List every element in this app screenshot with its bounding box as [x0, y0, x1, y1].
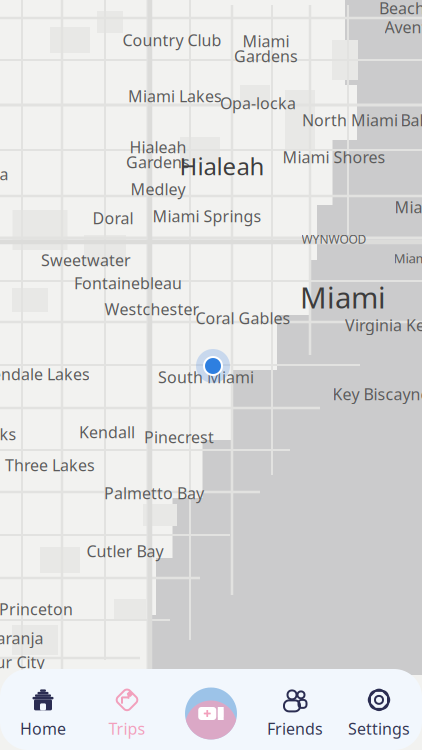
- staticText: Settings: [348, 718, 410, 739]
- staticText: Opa-locka: [220, 92, 296, 114]
- staticText: Princeton: [0, 598, 73, 620]
- staticText: Hialeah: [179, 150, 264, 182]
- staticText: Hialeah: [129, 136, 186, 158]
- staticText: ur City: [0, 651, 44, 673]
- staticText: Beach: [379, 0, 422, 19]
- staticText: South Miami: [158, 366, 254, 388]
- staticText: Pinecrest: [144, 426, 214, 448]
- staticText: Palmetto Bay: [104, 482, 204, 504]
- staticText: Naranja: [0, 627, 43, 649]
- staticText: Avent: [384, 16, 422, 38]
- staticText: Key Biscayne: [332, 383, 422, 405]
- staticText: Home: [20, 718, 66, 739]
- button[interactable]: Friends: [253, 684, 337, 742]
- staticText: North Miami: [302, 109, 398, 131]
- staticText: Miami Shores: [282, 146, 385, 168]
- staticText: Virginia Key: [345, 314, 422, 336]
- staticText: Miami: [300, 277, 386, 316]
- staticText: Kendale Lakes: [0, 363, 90, 385]
- staticText: Westchester: [104, 298, 199, 320]
- staticText: a: [0, 163, 8, 185]
- staticText: Sweetwater: [41, 249, 131, 271]
- staticText: Coral Gables: [195, 307, 290, 329]
- button[interactable]: Home: [1, 684, 85, 742]
- staticText: Cutler Bay: [86, 540, 163, 562]
- staticText: Miar: [394, 196, 422, 218]
- staticText: Friends: [267, 718, 323, 739]
- button[interactable]: Settings: [337, 684, 421, 742]
- staticText: Medley: [130, 178, 185, 200]
- staticText: Trips: [108, 718, 145, 739]
- button[interactable]: Record video: [169, 684, 253, 742]
- staticText: Three Lakes: [5, 454, 95, 476]
- staticText: ks: [0, 423, 16, 445]
- staticText: Miami: [393, 249, 422, 267]
- button[interactable]: Trips: [85, 684, 169, 742]
- staticText: Fontainebleau: [74, 272, 182, 294]
- staticText: Miami Lakes: [128, 85, 222, 107]
- staticText: Bal: [400, 109, 422, 131]
- staticText: Miami Springs: [152, 205, 261, 227]
- staticText: Doral: [92, 207, 133, 229]
- staticText: Country Club: [122, 29, 221, 51]
- staticText: Miami: [242, 30, 289, 52]
- staticText: Kendall: [79, 421, 135, 443]
- staticText: WYNWOOD: [301, 231, 366, 247]
- staticText: Gardens: [126, 151, 190, 173]
- staticText: Gardens: [234, 45, 298, 67]
